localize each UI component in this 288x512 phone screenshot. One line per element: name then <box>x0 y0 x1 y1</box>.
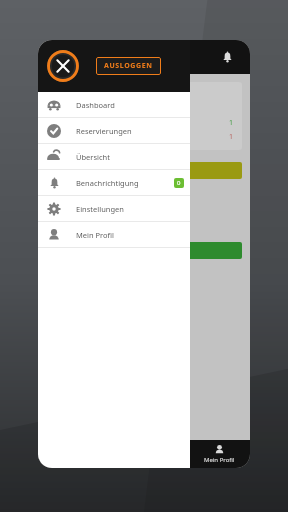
staticText: Fertig <box>46 264 242 274</box>
staticText: Dashboard <box>76 100 184 110</box>
staticText: Mein Profil <box>204 456 235 464</box>
staticText: 0 <box>141 165 147 177</box>
button[interactable]: AUSLOGGEN <box>96 57 161 75</box>
staticText: 0 <box>177 179 181 187</box>
staticText: Reservierungen <box>76 126 184 136</box>
button[interactable]: Mein Profil <box>188 440 250 468</box>
staticText: Benachrichtigung <box>76 178 174 188</box>
button[interactable]: 1 <box>46 242 242 259</box>
staticText: Einstellungen <box>76 204 184 214</box>
staticText: 1 <box>229 118 234 128</box>
staticText: Mein Profil <box>76 230 184 240</box>
button[interactable]: 0 <box>46 162 242 179</box>
staticText: Reservierung <box>54 90 104 101</box>
button[interactable]: Logo <box>45 48 81 84</box>
staticText: 1 <box>141 245 147 257</box>
button[interactable]: Dashboard <box>38 92 190 118</box>
button[interactable]: Benachrichtigung <box>38 170 190 196</box>
staticText: Vorbereitet <box>46 184 242 194</box>
button[interactable]: Benachrichtigungen <box>214 44 240 70</box>
button[interactable]: Übersicht <box>38 144 190 170</box>
button[interactable]: Reservierung <box>46 82 242 150</box>
button[interactable]: Mein Profil <box>38 222 190 248</box>
staticText: AUSLOGGEN <box>104 61 153 71</box>
button[interactable]: Einstellungen <box>38 196 190 222</box>
staticText: Übersicht <box>76 152 184 162</box>
staticText: 1 <box>229 132 234 142</box>
button[interactable]: Reservierungen <box>38 118 190 144</box>
